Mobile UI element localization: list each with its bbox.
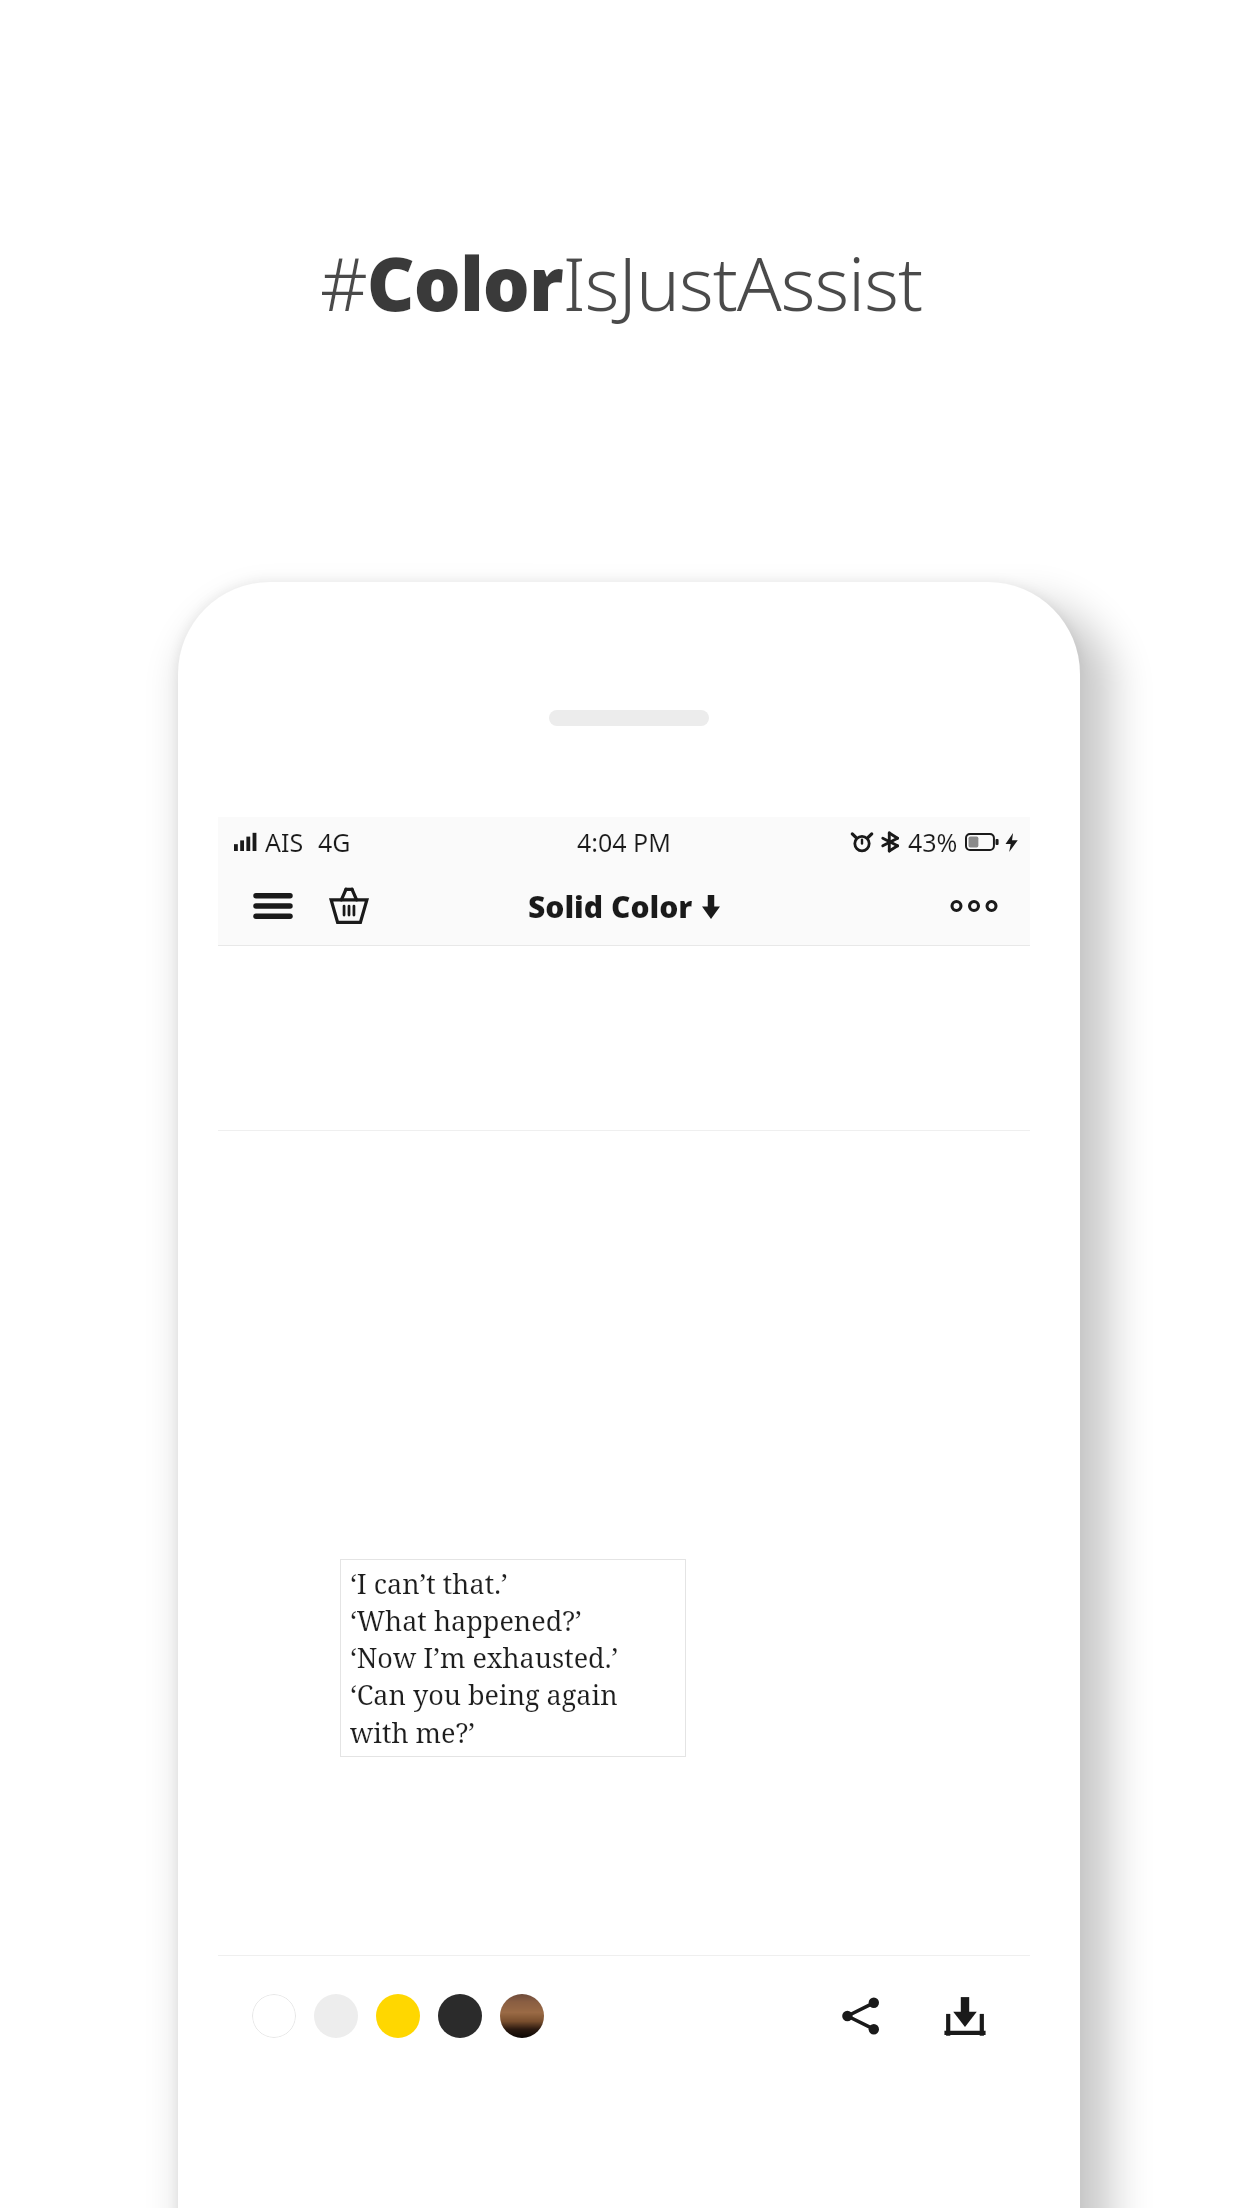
staticText: 4:04 PM: [577, 825, 671, 859]
button[interactable]: Basket: [322, 879, 376, 933]
button[interactable]: Share: [830, 1985, 892, 2047]
staticText: ‘Now I’m exhausted.’: [350, 1639, 619, 1676]
button[interactable]: Download: [934, 1985, 996, 2047]
button[interactable]: Solid Color: [516, 880, 732, 933]
staticText: ‘I can’t that.’: [350, 1565, 508, 1602]
button[interactable]: Gradient swatch: [500, 1994, 544, 2038]
staticText: 43%: [908, 825, 958, 859]
button[interactable]: Menu: [246, 879, 300, 933]
button[interactable]: More options: [944, 876, 1004, 936]
button[interactable]: Color swatch: [314, 1994, 358, 2038]
button[interactable]: Color swatch: [438, 1994, 482, 2038]
button[interactable]: Color swatch: [376, 1994, 420, 2038]
staticText: Solid Color: [528, 886, 693, 927]
staticText: ‘Can you being again with me?’: [350, 1676, 680, 1751]
button[interactable]: Color swatch: [252, 1994, 296, 2038]
staticText: 4G: [318, 825, 351, 859]
staticText: #ColorIsJustAssist: [320, 232, 923, 333]
staticText: ‘What happened?’: [350, 1602, 582, 1639]
staticText: AIS: [265, 825, 304, 859]
